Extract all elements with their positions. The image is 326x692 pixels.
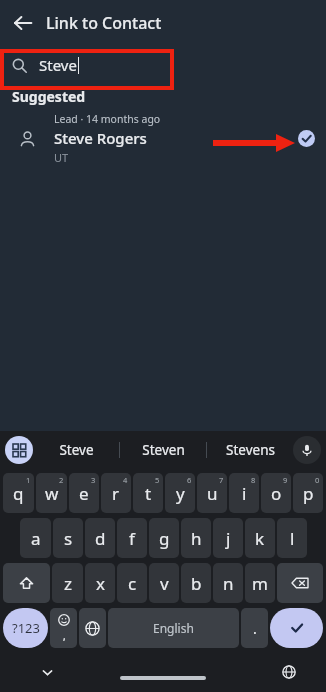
button[interactable]: Voice input	[293, 436, 321, 464]
button[interactable]: Stevens	[207, 431, 293, 469]
button[interactable]: Lead · 14 months ago	[0, 112, 326, 164]
staticText: ,	[63, 629, 66, 643]
button[interactable]: k	[245, 518, 275, 558]
button[interactable]: ?123	[3, 608, 48, 648]
button[interactable]: Shift	[3, 563, 50, 603]
button[interactable]: s	[53, 518, 83, 558]
staticText: 8	[251, 475, 256, 485]
button[interactable]: x	[85, 563, 115, 603]
staticText: o	[271, 482, 282, 505]
staticText: 3	[91, 475, 96, 485]
staticText: l	[290, 527, 295, 550]
staticText: c	[128, 572, 137, 595]
button[interactable]: j	[213, 518, 243, 558]
button[interactable]: o	[261, 473, 291, 513]
button[interactable]: Enter	[270, 608, 323, 648]
staticText: Stevens	[226, 441, 275, 459]
staticText: Steve	[59, 441, 94, 459]
button[interactable]: English	[108, 608, 239, 648]
button[interactable]: w	[36, 473, 67, 513]
staticText: w	[45, 482, 59, 505]
button[interactable]: y	[165, 473, 195, 513]
button[interactable]: Toolbar	[5, 436, 33, 464]
staticText: Lead · 14 months ago	[54, 112, 161, 126]
staticText: v	[160, 572, 169, 595]
button[interactable]: e	[69, 473, 99, 513]
button[interactable]: l	[277, 518, 307, 558]
button[interactable]: m	[245, 563, 275, 603]
staticText: Steve	[39, 55, 77, 75]
staticText: 7	[219, 475, 224, 485]
button[interactable]: r	[101, 473, 131, 513]
staticText: a	[31, 527, 41, 550]
staticText: r	[112, 482, 120, 505]
staticText: Steven	[142, 441, 185, 459]
staticText: 5	[155, 475, 160, 485]
staticText: e	[79, 482, 89, 505]
button[interactable]: h	[181, 518, 211, 558]
staticText: q	[13, 482, 24, 505]
button[interactable]: t	[133, 473, 163, 513]
staticText: 2	[59, 475, 64, 485]
staticText: 0	[315, 475, 320, 485]
button[interactable]: p	[293, 473, 323, 513]
button[interactable]: Selected	[286, 112, 326, 164]
staticText: m	[252, 572, 268, 595]
button[interactable]: b	[181, 563, 211, 603]
staticText: s	[64, 527, 73, 550]
button[interactable]: Period	[241, 608, 268, 648]
staticText: UT	[54, 150, 69, 164]
staticText: h	[191, 527, 202, 550]
button[interactable]: Steve	[0, 46, 326, 84]
staticText: d	[95, 527, 106, 550]
staticText: p	[303, 482, 314, 505]
button[interactable]: a	[20, 518, 51, 558]
button[interactable]: i	[229, 473, 259, 513]
button[interactable]: u	[197, 473, 227, 513]
staticText: k	[255, 527, 265, 550]
button[interactable]: v	[149, 563, 179, 603]
button[interactable]: Backspace	[277, 563, 323, 603]
button[interactable]: q	[3, 473, 34, 513]
button[interactable]: f	[117, 518, 147, 558]
staticText: i	[242, 482, 247, 505]
staticText: Steve Rogers	[54, 128, 147, 148]
button[interactable]: g	[149, 518, 179, 558]
button[interactable]: z	[52, 563, 83, 603]
staticText: j	[226, 527, 231, 550]
button[interactable]: c	[117, 563, 147, 603]
button[interactable]: Emoji	[50, 608, 77, 648]
staticText: t	[145, 482, 152, 505]
button[interactable]: Change language	[79, 608, 106, 648]
button[interactable]: Back	[0, 0, 46, 46]
staticText: b	[191, 572, 202, 595]
button[interactable]: Steven	[120, 431, 206, 469]
staticText: y	[176, 482, 185, 505]
staticText: 4	[123, 475, 128, 485]
button[interactable]: d	[85, 518, 115, 558]
staticText: Suggested	[12, 87, 86, 106]
staticText: 6	[187, 475, 192, 485]
staticText: ?123	[12, 619, 40, 637]
staticText: 1	[26, 475, 31, 485]
staticText: n	[223, 572, 234, 595]
staticText: English	[153, 620, 194, 636]
button[interactable]: Switch input method	[274, 657, 304, 687]
staticText: 9	[283, 475, 288, 485]
button[interactable]: Steve	[33, 431, 119, 469]
button[interactable]: n	[213, 563, 243, 603]
staticText: z	[64, 572, 72, 595]
staticText: u	[207, 482, 218, 505]
staticText: g	[159, 527, 170, 550]
staticText: Link to Contact	[46, 12, 162, 34]
staticText: .	[253, 619, 257, 638]
staticText: x	[96, 572, 105, 595]
staticText: f	[129, 527, 135, 550]
button[interactable]: Hide keyboard	[32, 657, 62, 687]
